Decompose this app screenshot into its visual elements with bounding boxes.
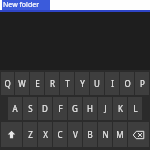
button[interactable]: R [45, 72, 59, 95]
button[interactable]: A [8, 97, 22, 120]
staticText: O [124, 78, 131, 89]
button[interactable]: Y [75, 72, 89, 95]
staticText: B [87, 129, 93, 140]
staticText: P [140, 78, 145, 89]
button[interactable]: Q [1, 72, 14, 95]
staticText: L [133, 103, 138, 114]
button[interactable]: S [23, 97, 37, 120]
staticText: Y [80, 78, 85, 89]
staticText: G [72, 103, 78, 114]
staticText: I [111, 78, 114, 89]
button[interactable]: V [68, 122, 82, 147]
staticText: New folder [3, 0, 40, 10]
staticText: Q [4, 78, 11, 89]
button[interactable]: G [68, 97, 82, 120]
button[interactable]: L [128, 97, 142, 120]
button[interactable]: P [135, 72, 149, 95]
staticText: Z [28, 129, 33, 140]
button[interactable]: M [113, 122, 127, 147]
staticText: F [58, 103, 63, 114]
staticText: U [94, 78, 100, 89]
button[interactable]: Shift [1, 122, 22, 147]
staticText: E [35, 78, 40, 89]
button[interactable]: U [90, 72, 104, 95]
staticText: H [87, 103, 93, 114]
staticText: M [116, 129, 124, 140]
button[interactable]: J [98, 97, 112, 120]
staticText: N [102, 129, 109, 140]
button[interactable]: I [105, 72, 119, 95]
staticText: J [104, 103, 107, 114]
staticText: X [43, 129, 48, 140]
staticText: V [73, 129, 78, 140]
staticText: K [118, 103, 123, 114]
button[interactable]: C [53, 122, 67, 147]
button[interactable]: H [83, 97, 97, 120]
staticText: T [65, 78, 70, 89]
staticText: R [50, 78, 55, 89]
staticText: C [57, 129, 63, 140]
button[interactable]: K [113, 97, 127, 120]
staticText: S [28, 103, 33, 114]
button[interactable]: D [38, 97, 52, 120]
staticText: D [42, 103, 48, 114]
button[interactable]: W [15, 72, 29, 95]
button[interactable]: Backspace [128, 122, 149, 147]
button[interactable]: E [30, 72, 44, 95]
staticText: W [18, 78, 26, 89]
button[interactable]: T [60, 72, 74, 95]
button[interactable]: F [53, 97, 67, 120]
button[interactable]: N [98, 122, 112, 147]
button[interactable]: Z [23, 122, 37, 147]
staticText: A [12, 103, 18, 114]
button[interactable]: B [83, 122, 97, 147]
button[interactable]: X [38, 122, 52, 147]
button[interactable]: New folder [0, 0, 150, 12]
button[interactable]: O [120, 72, 134, 95]
